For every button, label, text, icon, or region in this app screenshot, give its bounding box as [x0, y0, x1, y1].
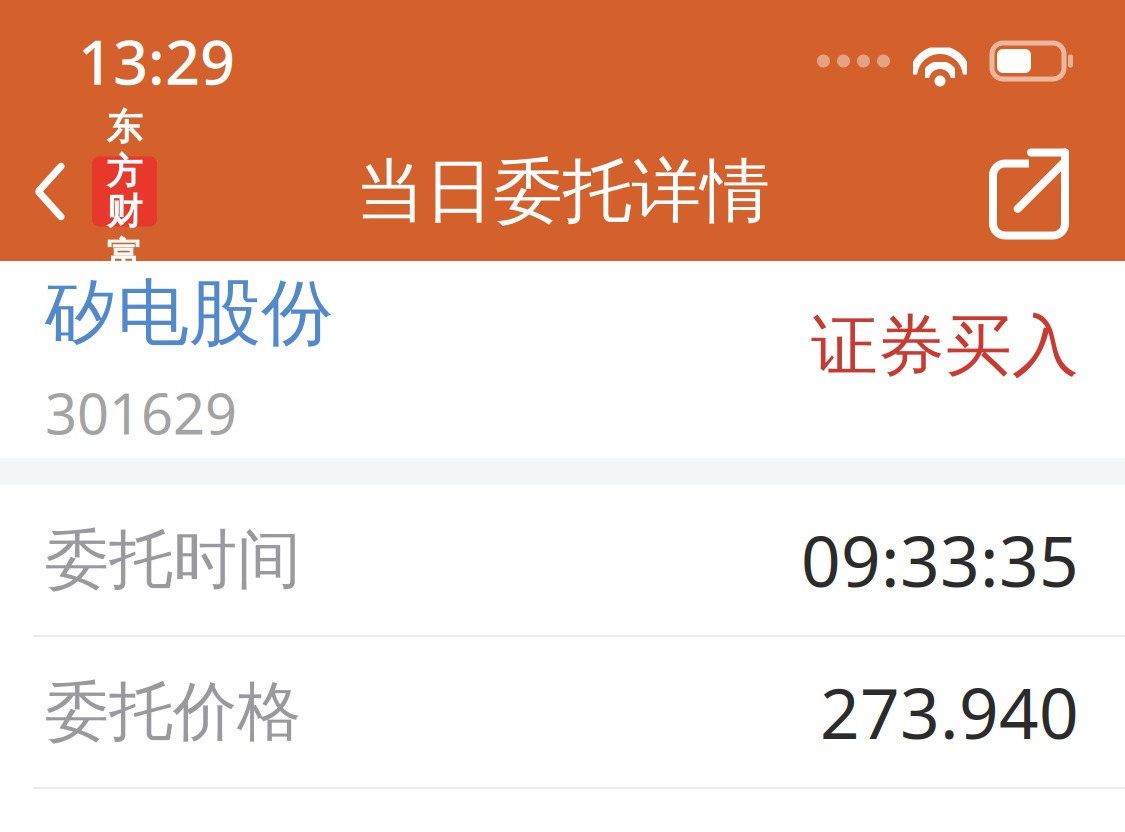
staticText: 委托价格 — [45, 673, 301, 751]
button[interactable]: 返回 — [0, 138, 157, 244]
staticText: 273.940 — [820, 666, 1079, 758]
staticText: 证券买入 — [811, 305, 1079, 387]
button[interactable]: 分享 — [987, 125, 1125, 257]
staticText: 财富 — [106, 189, 142, 278]
staticText: 09:33:35 — [801, 514, 1079, 606]
staticText: 301629 — [45, 375, 237, 450]
staticText: 东方 — [106, 105, 142, 193]
staticText: 矽电股份 — [45, 269, 333, 357]
staticText: 委托时间 — [45, 521, 301, 599]
staticText: 当日委托详情 — [355, 149, 769, 234]
staticText: 13:29 — [78, 20, 235, 102]
